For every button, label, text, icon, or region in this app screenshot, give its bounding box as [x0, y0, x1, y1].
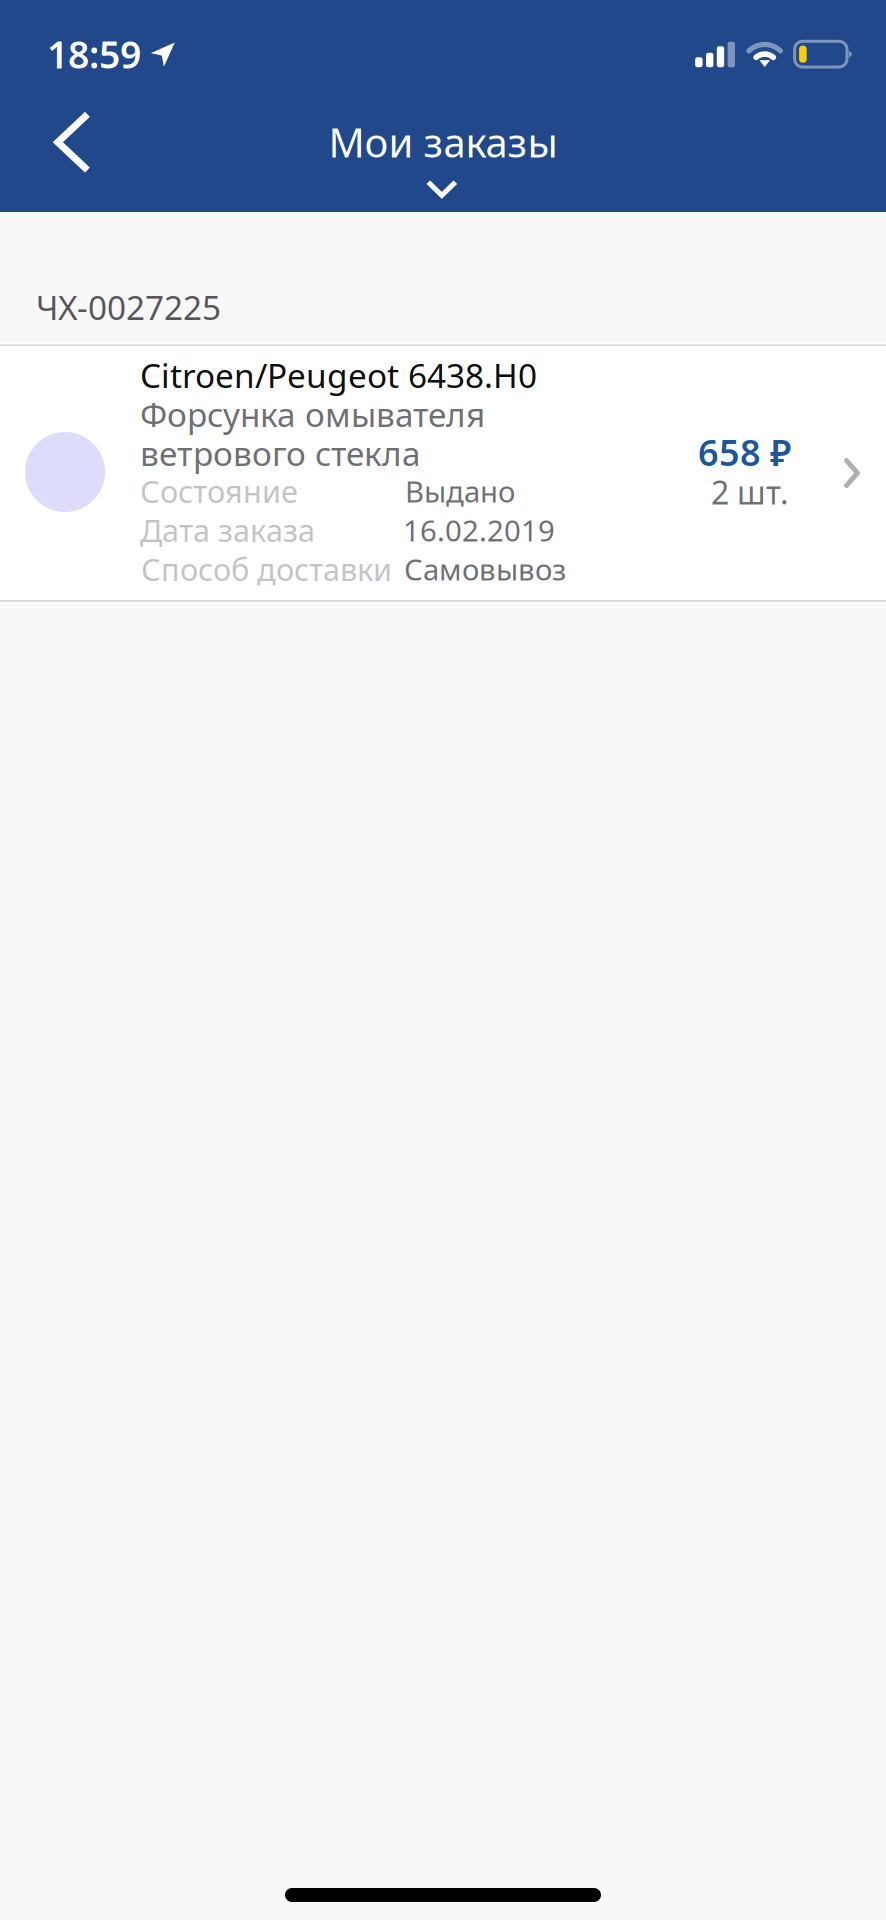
button[interactable]: Citroen/Peugeot 6438.H0 [0, 346, 886, 600]
staticText: Выдано [405, 471, 515, 510]
button[interactable]: Back [21, 92, 125, 192]
staticText: Citroen/Peugeot 6438.H0 [140, 353, 537, 397]
staticText: Мои заказы [328, 115, 557, 168]
staticText: Способ доставки [141, 549, 392, 589]
staticText: 658 ₽ [698, 428, 791, 476]
staticText: 2 шт. [711, 471, 789, 513]
button[interactable]: Collapse order [394, 162, 490, 216]
staticText: Дата заказа [140, 510, 315, 550]
staticText: 18:59 [47, 29, 141, 79]
staticText: Состояние [140, 471, 298, 511]
staticText: Форсунка омывателя [140, 392, 485, 436]
staticText: ЧХ-0027225 [36, 285, 221, 329]
staticText: ветрового стекла [140, 431, 421, 475]
staticText: Самовывоз [404, 549, 566, 588]
staticText: 16.02.2019 [403, 510, 555, 549]
